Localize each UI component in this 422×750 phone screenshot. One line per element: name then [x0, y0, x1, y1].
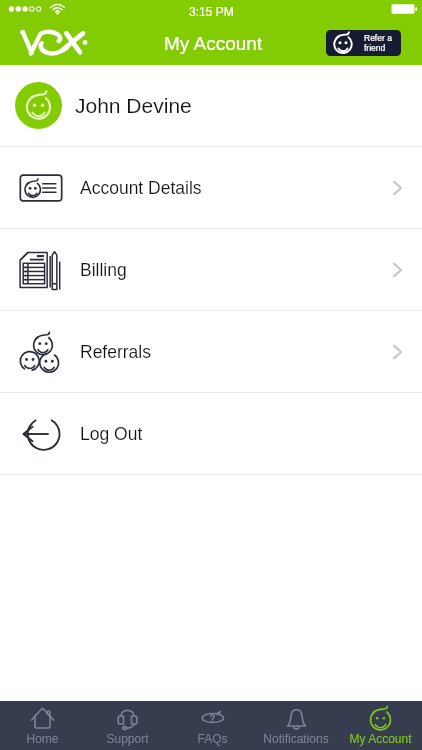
- staticText: Support: [106, 732, 149, 745]
- button[interactable]: Home: [0, 701, 85, 750]
- staticText: Home: [26, 732, 59, 745]
- staticText: My Account: [164, 33, 263, 54]
- staticText: John Devine: [75, 94, 192, 117]
- staticText: FAQs: [197, 732, 228, 745]
- button[interactable]: Refer a friend: [326, 30, 401, 56]
- staticText: Notifications: [263, 732, 329, 745]
- staticText: My Account: [349, 732, 412, 745]
- button[interactable]: Log Out: [0, 393, 422, 474]
- button[interactable]: John Devine: [0, 65, 422, 146]
- other: My Account: [368, 706, 393, 731]
- button[interactable]: My Account: [338, 701, 422, 750]
- other: FAQs: [200, 706, 225, 731]
- button[interactable]: Billing: [0, 229, 422, 310]
- button[interactable]: Notifications: [254, 701, 338, 750]
- button[interactable]: Support: [85, 701, 170, 750]
- button[interactable]: Account Details: [0, 147, 422, 228]
- staticText: 3:15 PM: [189, 5, 234, 18]
- staticText: Referrals: [80, 342, 151, 362]
- button[interactable]: Referrals: [0, 311, 422, 392]
- staticText: Billing: [80, 260, 127, 280]
- other: Notifications: [284, 706, 309, 731]
- staticText: Refer a friend: [364, 33, 392, 53]
- other: Home: [30, 706, 55, 731]
- staticText: Log Out: [80, 424, 143, 444]
- button[interactable]: FAQs: [170, 701, 254, 750]
- staticText: Account Details: [80, 178, 202, 198]
- other: Support: [115, 706, 140, 731]
